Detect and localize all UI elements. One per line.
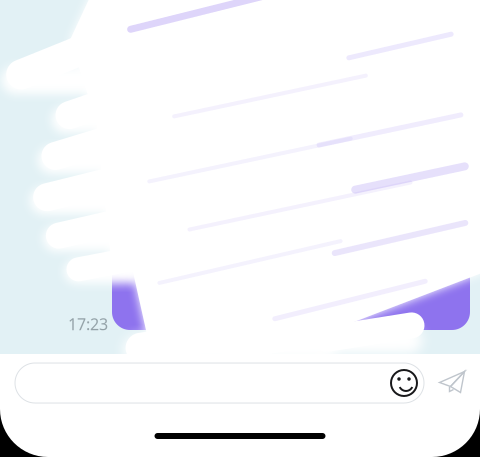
button[interactable]: Send [437,370,467,394]
staticText: 17:23 [68,313,108,335]
button[interactable]: Emoji [391,370,417,396]
button[interactable]: Message [15,363,424,403]
